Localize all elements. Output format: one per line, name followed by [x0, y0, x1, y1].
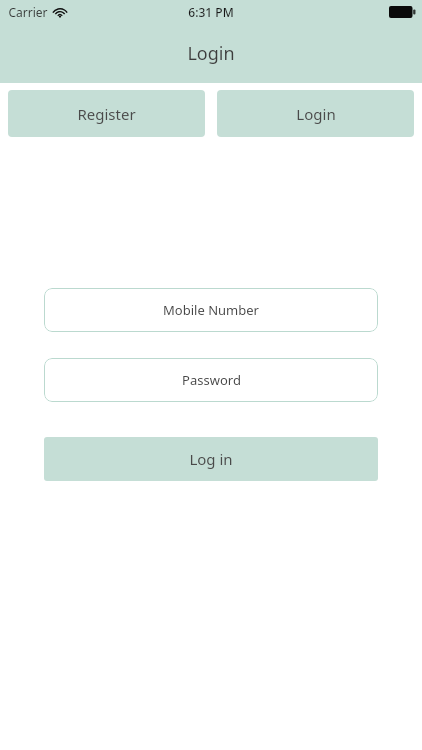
button[interactable]: Password — [44, 358, 378, 402]
staticText: 6:31 PM — [188, 4, 234, 20]
button[interactable]: Login — [217, 90, 414, 137]
staticText: Mobile Number — [163, 301, 259, 319]
button[interactable]: Register — [8, 90, 205, 137]
button[interactable]: Mobile Number — [44, 288, 378, 332]
staticText: Carrier — [8, 4, 48, 20]
staticText: Register — [77, 104, 136, 124]
staticText: Login — [187, 41, 235, 66]
staticText: Log in — [189, 449, 233, 469]
staticText: Login — [296, 104, 336, 124]
button[interactable]: Log in — [44, 437, 378, 481]
other: Battery full — [389, 6, 416, 18]
staticText: Password — [182, 371, 241, 389]
other: Wi-Fi signal — [53, 7, 67, 18]
